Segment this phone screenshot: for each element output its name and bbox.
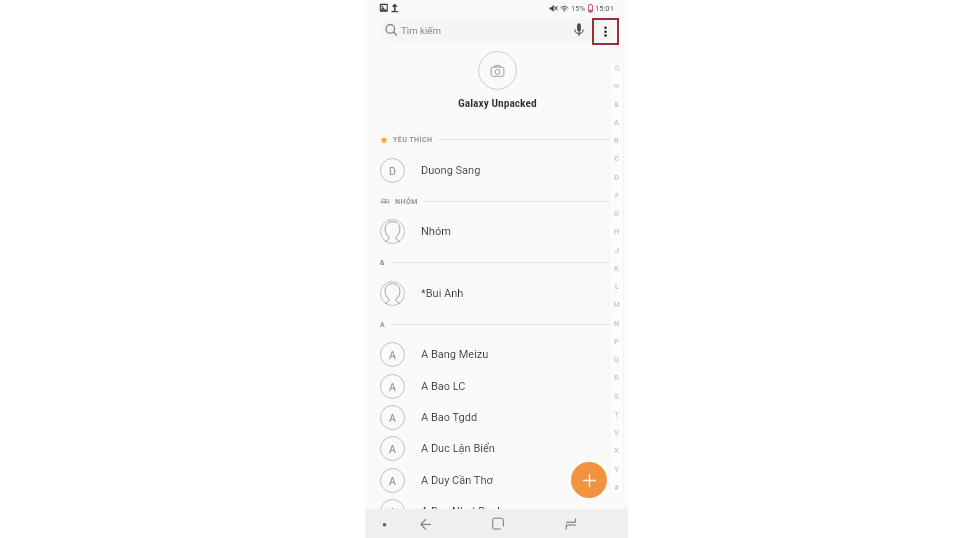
staticText: N	[614, 320, 619, 328]
staticText: H	[614, 228, 619, 236]
staticText: Duong Sang	[421, 164, 481, 177]
staticText: A	[389, 412, 396, 424]
button[interactable]: A	[365, 340, 628, 368]
button[interactable]: Profile photo	[478, 51, 517, 90]
staticText: S	[614, 393, 619, 401]
staticText: M	[613, 301, 620, 309]
staticText: G	[614, 210, 619, 218]
button[interactable]: Tìm kiếm	[380, 19, 615, 42]
staticText: A	[389, 349, 396, 361]
button[interactable]: A	[365, 466, 628, 494]
staticText: A	[389, 443, 396, 455]
staticText: L	[615, 283, 619, 291]
staticText: R	[614, 374, 619, 382]
staticText: A Bao Tgdd	[421, 411, 478, 424]
staticText: D	[614, 174, 619, 182]
staticText: Q	[614, 356, 619, 364]
staticText: A Bang Meizu	[421, 348, 489, 361]
button[interactable]: Menu indicator	[370, 509, 398, 538]
button[interactable]: A	[365, 403, 628, 431]
staticText: A Duc Lặn Biển	[421, 442, 495, 455]
button[interactable]: Add contact	[571, 462, 607, 498]
staticText: F	[615, 192, 619, 200]
staticText: Galaxy Unpacked	[458, 96, 537, 109]
staticText: J	[615, 247, 619, 255]
staticText: A Duy Cần Thơ	[421, 474, 493, 487]
staticText: A	[614, 119, 619, 127]
button[interactable]: A	[365, 434, 628, 462]
staticText: 15%	[571, 4, 586, 13]
staticText: &	[614, 101, 619, 109]
staticText: A	[389, 475, 396, 487]
button[interactable]: A	[365, 497, 628, 525]
button[interactable]: More options	[592, 18, 619, 45]
staticText: A Bao LC	[421, 380, 466, 393]
staticText: B	[614, 137, 619, 145]
staticText: A	[389, 506, 396, 518]
staticText: NHÓM	[395, 198, 418, 206]
button[interactable]: Voice search	[569, 19, 589, 41]
staticText: A	[389, 381, 396, 393]
staticText: &	[380, 259, 385, 267]
button[interactable]: Alphabet index	[609, 56, 624, 495]
button[interactable]: Home	[483, 509, 513, 538]
staticText: V	[614, 429, 619, 437]
staticText: A Duy Nhat Bank	[421, 505, 503, 518]
staticText: D	[389, 165, 396, 177]
button[interactable]: D	[365, 156, 628, 184]
staticText: Tìm kiếm	[401, 25, 441, 36]
staticText: 15:01	[595, 4, 614, 13]
staticText: T	[614, 411, 619, 419]
staticText: Nhóm	[421, 225, 451, 238]
staticText: Y	[614, 466, 619, 474]
staticText: X	[614, 447, 619, 455]
staticText: P	[614, 338, 619, 346]
staticText: K	[614, 265, 619, 273]
staticText: A	[380, 321, 386, 329]
staticText: C	[614, 155, 619, 163]
button[interactable]: Nhóm	[365, 217, 628, 245]
button[interactable]: Recents	[556, 509, 586, 538]
staticText: YÊU THÍCH	[393, 136, 433, 144]
button[interactable]: Back	[409, 509, 439, 538]
button[interactable]: A	[365, 372, 628, 400]
staticText: *Bui Anh	[421, 287, 464, 300]
button[interactable]: *Bui Anh	[365, 279, 628, 307]
staticText: #	[614, 484, 619, 492]
